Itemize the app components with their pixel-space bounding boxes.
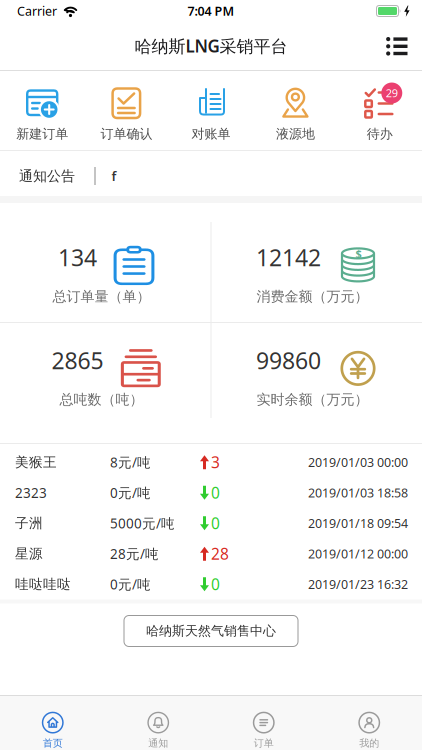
- button[interactable]: 菜单: [372, 24, 422, 67]
- staticText: 29: [386, 86, 398, 100]
- button[interactable]: 对账单: [169, 81, 253, 140]
- staticText: 待办: [367, 126, 393, 142]
- staticText: 0: [211, 482, 220, 503]
- staticText: 总订单量（单）: [52, 288, 150, 305]
- staticText: 12142: [256, 242, 321, 273]
- staticText: 订单: [254, 737, 274, 749]
- staticText: 2019/01/18 09:54: [308, 515, 408, 532]
- staticText: 2019/01/03 18:58: [308, 484, 408, 501]
- button[interactable]: 液源地: [253, 81, 338, 140]
- staticText: 哈纳斯天然气销售中心: [146, 623, 276, 639]
- staticText: 134: [58, 242, 97, 273]
- staticText: 2019/01/12 00:00: [308, 545, 408, 562]
- staticText: 2323: [15, 484, 47, 502]
- staticText: 总吨数（吨）: [59, 391, 143, 408]
- button[interactable]: 新建订单: [0, 81, 84, 140]
- staticText: 99860: [256, 345, 321, 376]
- staticText: 8元/吨: [110, 453, 151, 471]
- staticText: 新建订单: [16, 126, 68, 142]
- staticText: 2865: [51, 345, 103, 376]
- staticText: 通知: [148, 737, 168, 749]
- staticText: 首页: [43, 737, 63, 749]
- staticText: 0元/吨: [110, 575, 151, 593]
- button[interactable]: 哈纳斯天然气销售中心: [124, 615, 298, 646]
- staticText: Carrier: [17, 3, 57, 19]
- button[interactable]: 订单确认: [84, 81, 169, 140]
- staticText: 我的: [359, 737, 379, 749]
- button[interactable]: 首页: [0, 696, 105, 750]
- staticText: 哇哒哇哒: [15, 576, 71, 593]
- staticText: 哈纳斯LNG采销平台: [134, 35, 287, 57]
- staticText: 消费金额（万元）: [256, 288, 368, 305]
- staticText: f: [111, 167, 116, 185]
- staticText: 液源地: [276, 126, 315, 142]
- staticText: 2019/01/03 00:00: [308, 454, 408, 471]
- staticText: 5000元/吨: [110, 514, 175, 532]
- staticText: 28元/吨: [110, 545, 159, 563]
- button[interactable]: 订单: [211, 696, 316, 750]
- staticText: 0元/吨: [110, 484, 151, 502]
- staticText: 实时余额（万元）: [256, 391, 368, 408]
- button[interactable]: 通知公告: [0, 151, 422, 196]
- staticText: $: [355, 246, 361, 261]
- staticText: 2019/01/23 16:32: [308, 576, 408, 593]
- staticText: 对账单: [191, 126, 230, 142]
- staticText: 子洲: [15, 515, 43, 532]
- staticText: 0: [211, 574, 220, 595]
- staticText: 美猴王: [15, 454, 57, 471]
- staticText: 7:04 PM: [187, 3, 234, 19]
- staticText: 0: [211, 513, 220, 534]
- button[interactable]: 29: [338, 81, 422, 140]
- button[interactable]: 通知: [105, 696, 211, 750]
- button[interactable]: 我的: [316, 696, 422, 750]
- staticText: 订单确认: [101, 126, 153, 142]
- staticText: 28: [211, 543, 229, 564]
- staticText: 通知公告: [19, 167, 75, 185]
- staticText: 3: [211, 452, 220, 473]
- staticText: 星源: [15, 545, 43, 562]
